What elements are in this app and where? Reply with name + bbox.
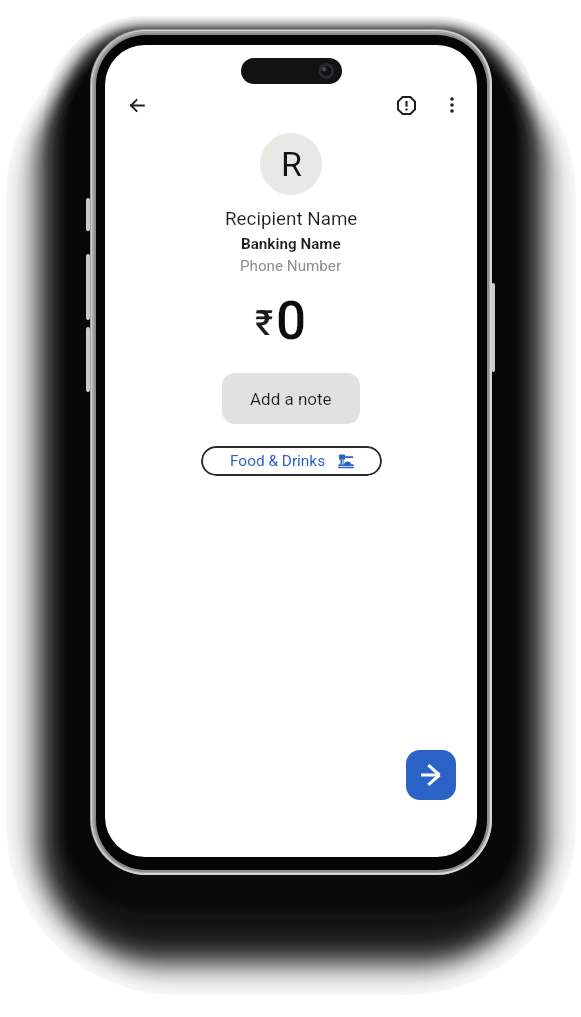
staticText: R [281,144,302,184]
staticText: Phone Number [240,257,342,275]
button[interactable]: More options [432,85,472,125]
button[interactable]: Food & Drinks [201,446,382,476]
button[interactable]: Back [117,85,157,125]
staticText: Food & Drinks [230,452,326,470]
staticText: 0 [276,290,307,352]
button[interactable]: Report [386,85,426,125]
staticText: Add a note [250,389,332,409]
staticText: Banking Name [241,235,341,253]
staticText: ₹ [255,303,274,344]
staticText: Recipient Name [225,208,358,230]
button[interactable]: Proceed [406,750,456,800]
button[interactable]: Add a note [222,373,360,424]
